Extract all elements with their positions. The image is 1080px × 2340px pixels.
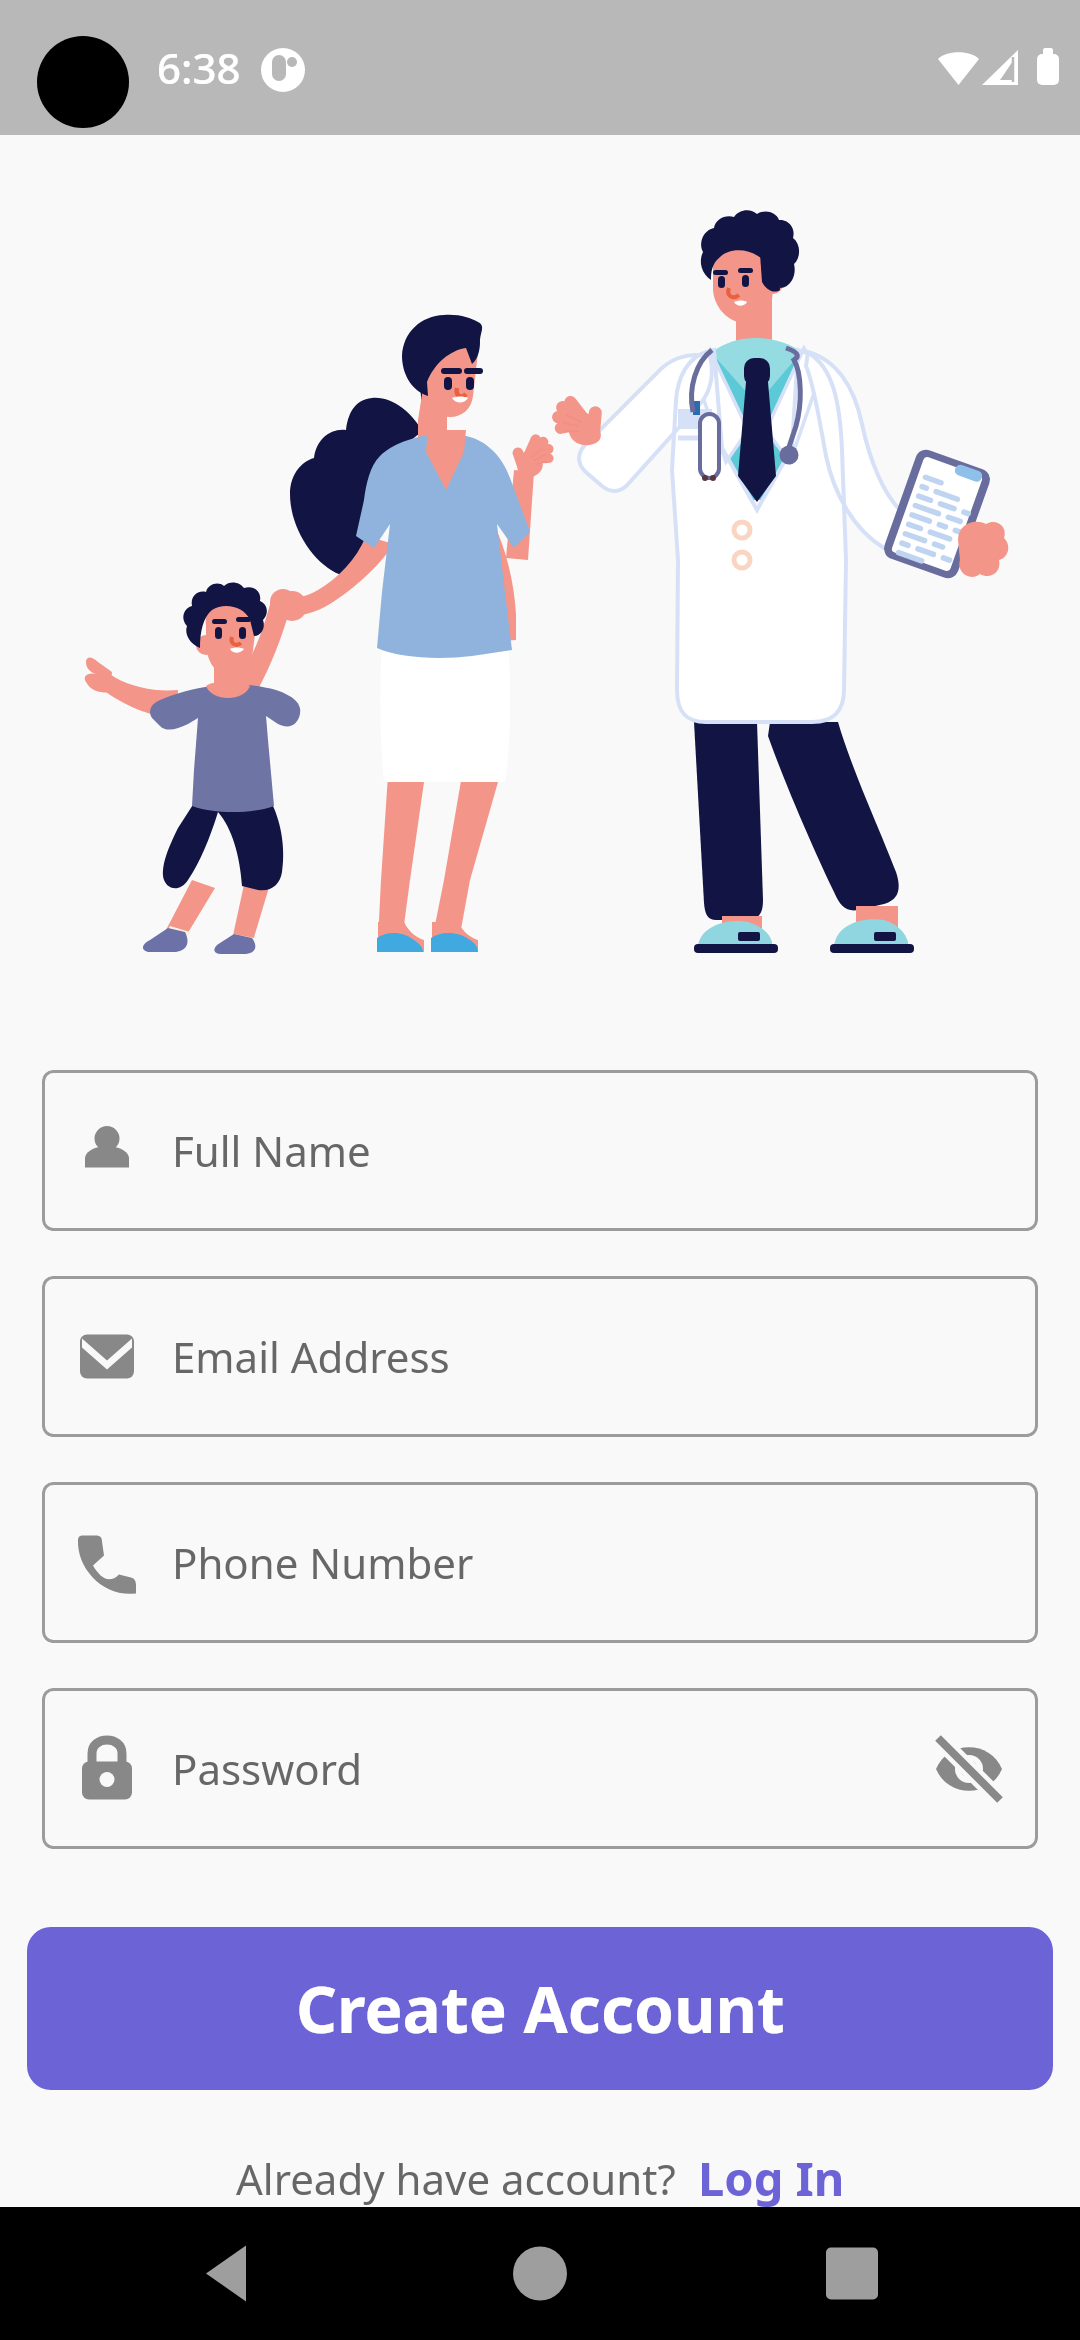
button[interactable]: Show password [924, 1724, 1014, 1814]
button[interactable]: Phone Number [42, 1482, 1038, 1643]
button[interactable]: Create Account [27, 1927, 1053, 2090]
button[interactable]: Full Name [42, 1070, 1038, 1231]
staticText: Full Name [172, 1122, 371, 1179]
staticText: 6:38 [157, 39, 241, 96]
staticText: Password [172, 1740, 362, 1797]
button[interactable]: Log In [698, 2146, 845, 2210]
staticText: Log In [698, 2146, 845, 2210]
staticText: Email Address [172, 1328, 450, 1385]
staticText: Already have account? [236, 2150, 676, 2207]
button[interactable]: Password [42, 1688, 1038, 1849]
staticText: Phone Number [172, 1534, 474, 1591]
button[interactable]: Email Address [42, 1276, 1038, 1437]
staticText: Create Account [296, 1965, 785, 2052]
